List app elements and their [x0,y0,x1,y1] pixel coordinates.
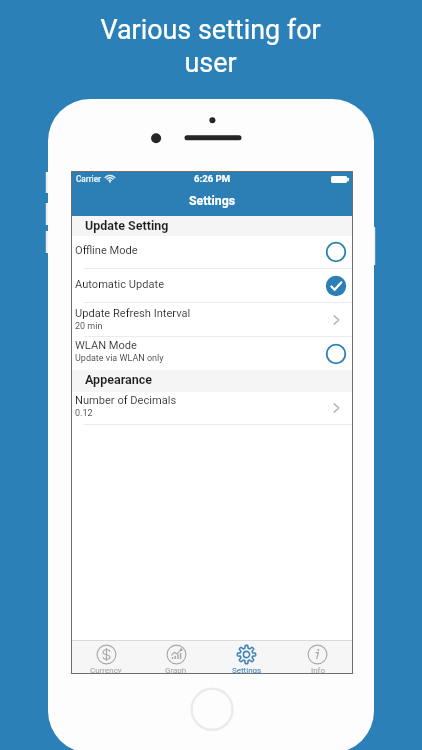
button[interactable]: Disabled [324,341,348,367]
staticText: Graph [165,666,187,675]
staticText: Update via WLAN only [75,353,164,364]
staticText: Offline Mode [75,244,138,257]
button[interactable]: Update Refresh Interval [71,303,353,336]
staticText: 0.12 [75,408,93,419]
staticText: Currency [90,666,122,675]
button[interactable]: Disabled [324,239,348,265]
staticText: 20 min [75,321,103,332]
button[interactable]: Number of Decimals [71,392,353,424]
staticText: Automatic Update [75,278,165,291]
button[interactable]: Automatic Update [71,269,353,302]
button[interactable]: Offline Mode [71,236,353,268]
staticText: Appearance [85,372,153,387]
button[interactable]: Info [282,641,353,674]
staticText: Update Refresh Interval [75,307,191,320]
staticText: Settings [189,194,236,208]
button[interactable]: Open [324,395,348,421]
staticText: Carrier [76,174,101,184]
staticText: Info [311,666,325,675]
staticText: 6:26 PM [194,173,231,184]
button[interactable]: WLAN Mode [71,337,353,370]
button[interactable]: Enabled [324,273,348,299]
staticText: Settings [232,666,262,675]
button[interactable]: Currency [71,641,141,674]
button[interactable]: Open [324,307,348,333]
staticText: WLAN Mode [75,339,137,352]
staticText: Number of Decimals [75,394,177,407]
button[interactable]: Graph [141,641,211,674]
button[interactable]: Settings [211,641,282,674]
staticText: Various setting for user [100,14,321,79]
staticText: Update Setting [85,218,169,233]
